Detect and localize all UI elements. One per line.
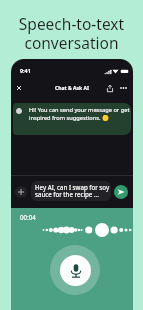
staticText: Hey AI, can I swap for soy sauce for the… xyxy=(35,183,110,199)
staticText: Hi! You can send your message or get ins… xyxy=(29,106,130,122)
button[interactable]: Add attachment xyxy=(15,186,27,198)
button[interactable]: Hey AI, can I swap for soy sauce for the… xyxy=(31,181,111,201)
staticText: Chat & Ask AI xyxy=(11,85,133,92)
button[interactable]: Close xyxy=(11,80,27,96)
button[interactable]: Record xyxy=(50,245,100,295)
staticText: Speech-to-text conversation xyxy=(0,13,143,53)
button[interactable]: Send xyxy=(114,185,128,199)
button[interactable]: More options xyxy=(115,80,131,96)
staticText: 9:41 xyxy=(20,67,31,74)
button[interactable]: Share xyxy=(102,80,118,96)
staticText: 00:04 xyxy=(20,213,36,221)
